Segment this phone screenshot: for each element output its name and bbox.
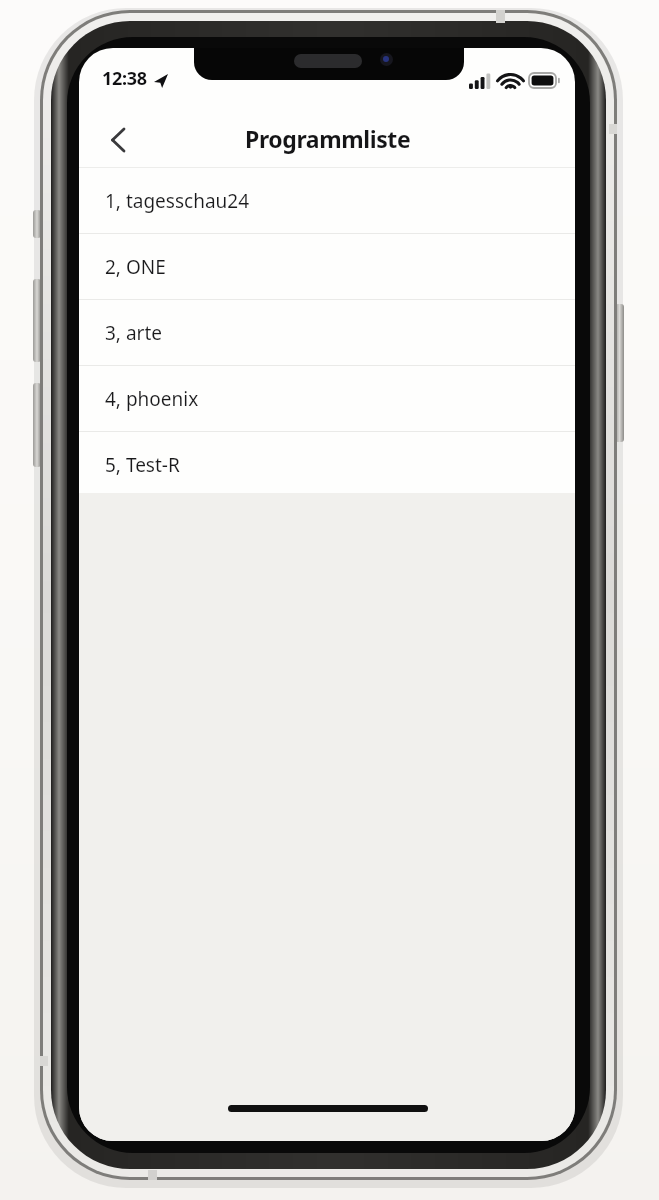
staticText: 1, tagesschau24 — [105, 188, 250, 214]
staticText: 4, phoenix — [105, 386, 199, 412]
staticText: 5, Test-R — [105, 452, 180, 478]
staticText: 12:38 — [102, 66, 147, 91]
button[interactable]: 3, arte — [79, 300, 575, 365]
button[interactable]: 1, tagesschau24 — [79, 168, 575, 233]
staticText: 2, ONE — [105, 254, 166, 280]
staticText: 3, arte — [105, 320, 162, 346]
button[interactable]: 4, phoenix — [79, 366, 575, 431]
button[interactable]: 2, ONE — [79, 234, 575, 299]
button[interactable] — [99, 122, 135, 158]
button[interactable]: 5, Test-R — [79, 432, 575, 497]
staticText: Programmliste — [245, 123, 411, 154]
